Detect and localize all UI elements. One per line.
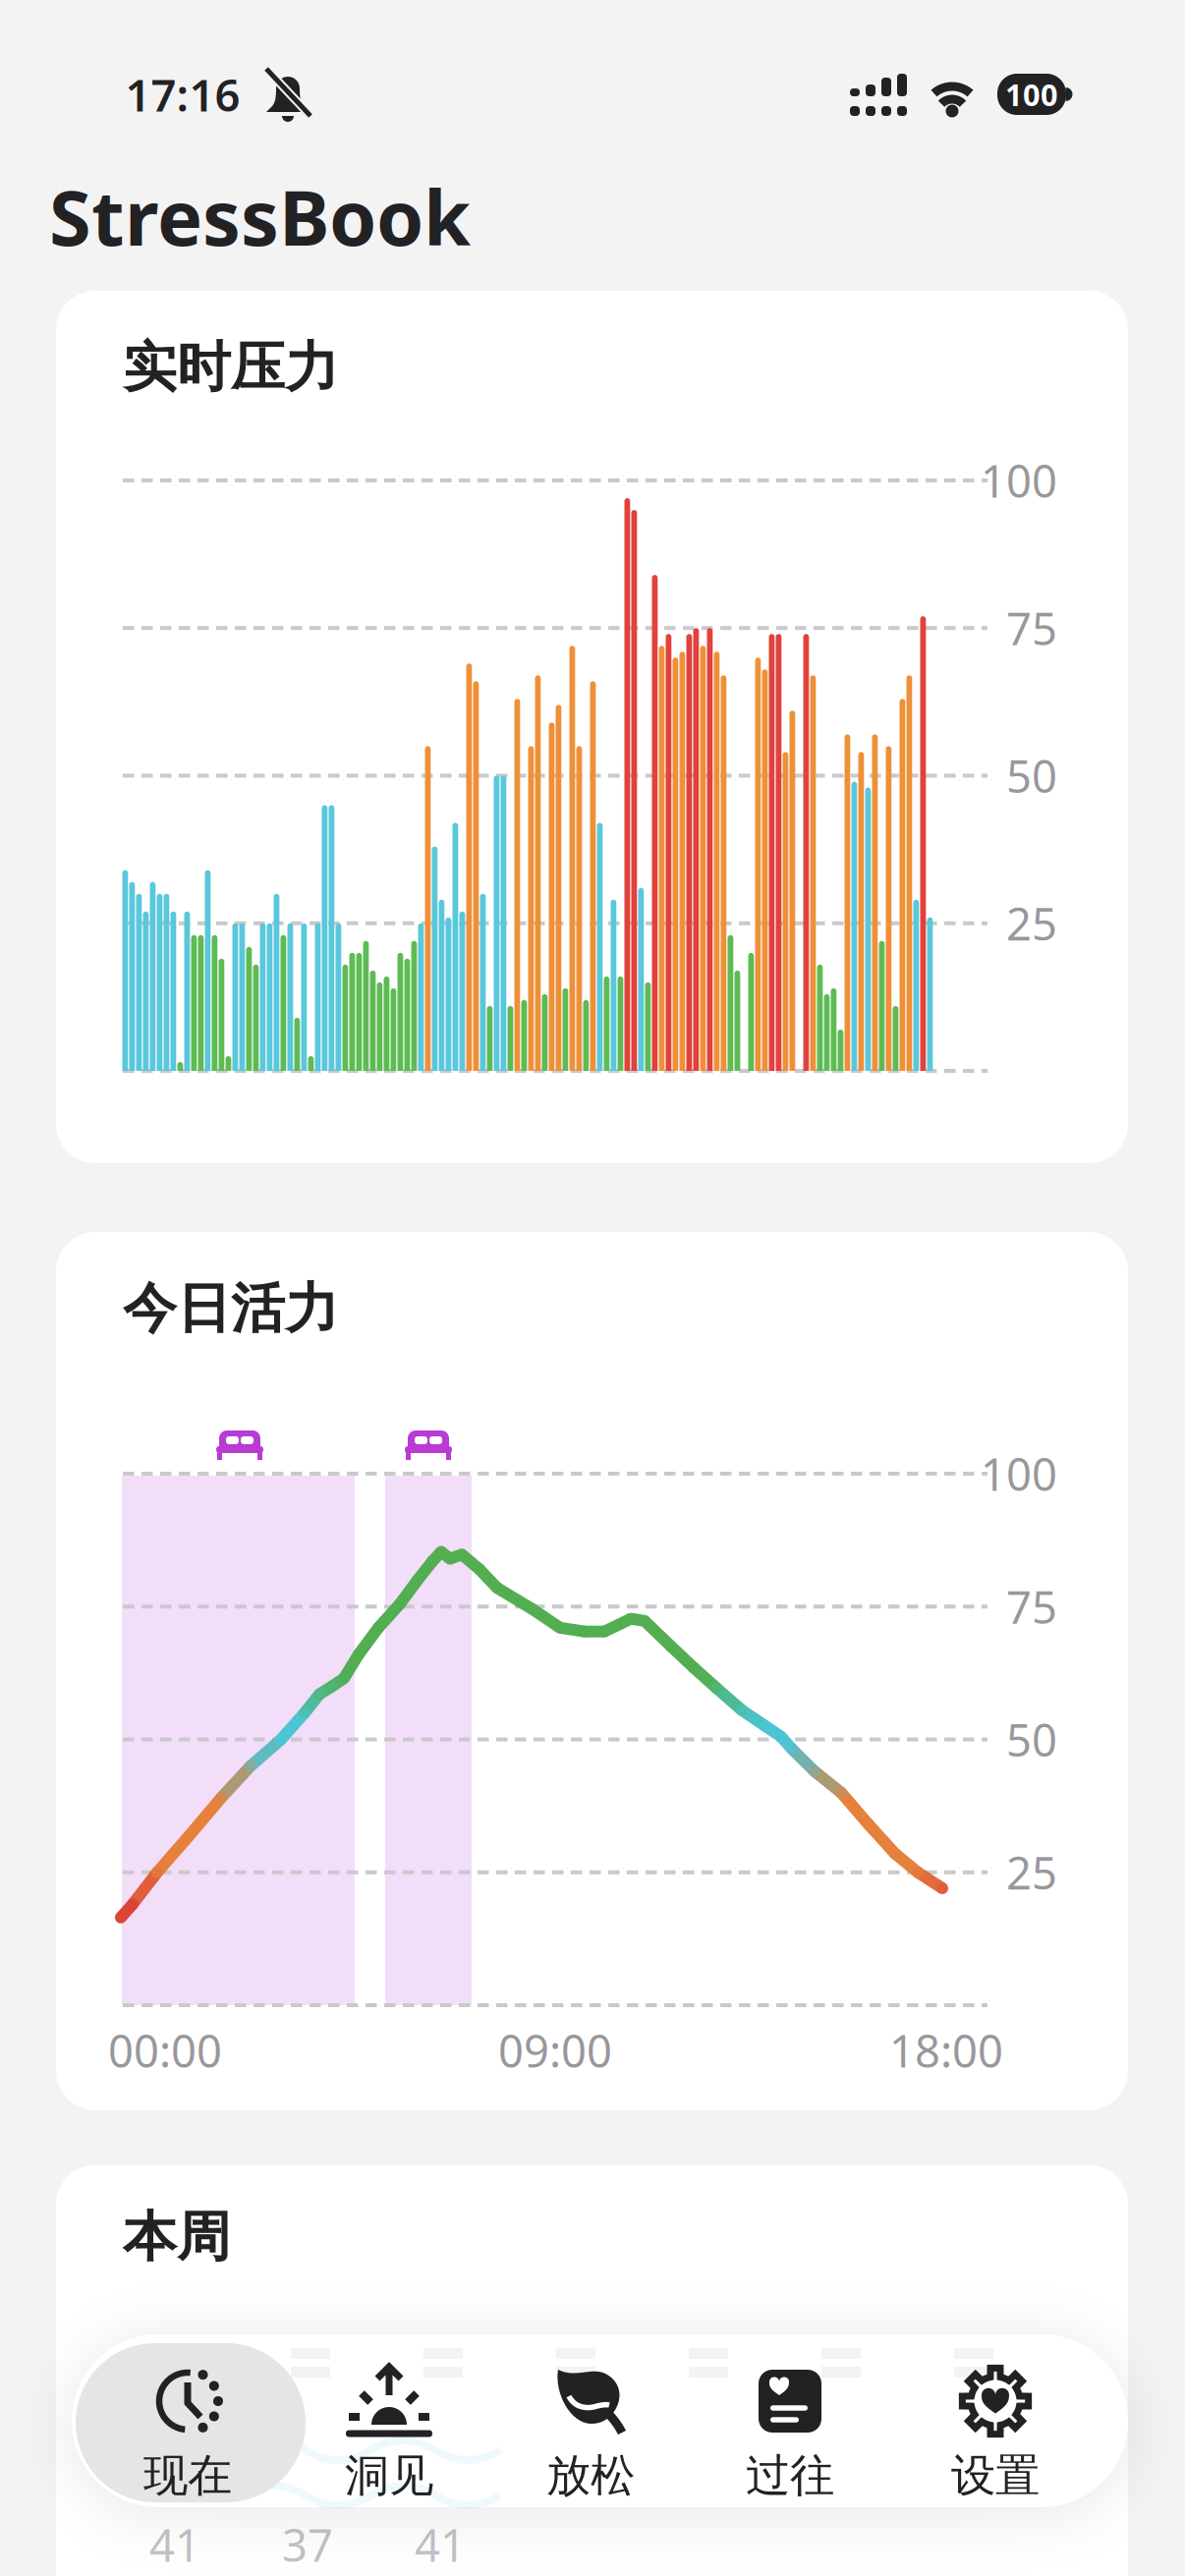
button[interactable]: 现在 — [115, 2342, 260, 2507]
staticText: 过往 — [746, 2448, 834, 2503]
staticText: 25 — [1006, 1843, 1057, 1902]
staticText: 41 — [149, 2515, 200, 2574]
staticText: 本周 — [123, 2204, 231, 2270]
staticText: 设置 — [951, 2448, 1040, 2503]
button[interactable]: 洞见 — [316, 2342, 462, 2507]
button[interactable]: 设置 — [923, 2342, 1068, 2507]
staticText: 17:16 — [125, 65, 240, 124]
staticText: 今日活力 — [123, 1276, 339, 1342]
staticText: 41 — [415, 2515, 466, 2574]
staticText: 75 — [1006, 1577, 1057, 1636]
staticText: 洞见 — [345, 2448, 433, 2503]
staticText: 00:00 — [108, 2021, 222, 2080]
staticText: 100 — [1005, 74, 1058, 114]
staticText: 放松 — [546, 2448, 635, 2503]
staticText: 50 — [1006, 1710, 1057, 1769]
staticText: 100 — [981, 1444, 1057, 1503]
staticText: StressBook — [49, 166, 471, 267]
button[interactable]: 放松 — [518, 2342, 663, 2507]
staticText: 实时压力 — [123, 334, 339, 400]
staticText: 25 — [1006, 894, 1057, 953]
staticText: 37 — [282, 2515, 333, 2574]
staticText: 75 — [1006, 598, 1057, 658]
staticText: 现在 — [143, 2448, 232, 2503]
staticText: 100 — [981, 451, 1057, 510]
staticText: 09:00 — [498, 2021, 612, 2080]
staticText: 18:00 — [889, 2021, 1003, 2080]
staticText: 50 — [1006, 746, 1057, 805]
button[interactable]: 过往 — [717, 2342, 863, 2507]
